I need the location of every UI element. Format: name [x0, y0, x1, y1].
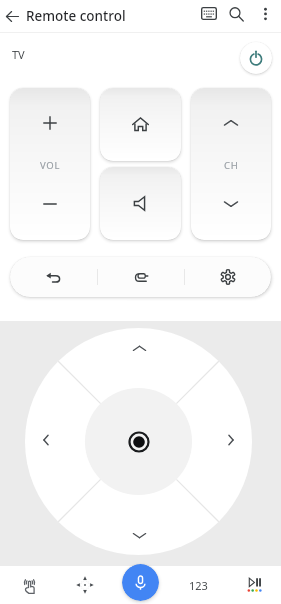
button[interactable]: Volume up	[10, 88, 90, 162]
button[interactable]: Input source	[98, 257, 184, 297]
button[interactable]: OK	[95, 398, 183, 486]
button[interactable]: Mute	[100, 167, 181, 240]
button[interactable]: Right	[214, 423, 248, 457]
button[interactable]: Back	[10, 257, 97, 297]
button[interactable]: Touchpad	[0, 566, 59, 604]
staticText: Remote control	[26, 7, 126, 25]
button[interactable]: Search	[222, 0, 250, 28]
button[interactable]: Navigate up	[0, 4, 24, 28]
button[interactable]: Up	[122, 331, 156, 365]
button[interactable]: D-pad	[59, 566, 110, 604]
button[interactable]: Home	[100, 88, 181, 161]
button[interactable]: Keyboard	[195, 0, 223, 27]
button[interactable]: Power	[240, 42, 272, 74]
staticText: TV	[12, 47, 25, 62]
button[interactable]: Media controls	[228, 566, 281, 604]
button[interactable]: Left	[29, 423, 63, 457]
button[interactable]: Numbers	[169, 566, 228, 604]
button[interactable]: Down	[122, 518, 156, 552]
staticText: VOL	[40, 159, 61, 172]
button[interactable]: Channel up	[191, 88, 271, 162]
button[interactable]: Volume down	[10, 170, 90, 240]
staticText: CH	[224, 159, 239, 172]
button[interactable]: Voice search	[122, 564, 159, 601]
button[interactable]: Settings	[185, 257, 271, 297]
button[interactable]: More options	[253, 2, 277, 26]
staticText: 123	[189, 578, 208, 593]
button[interactable]: Channel down	[191, 170, 271, 240]
